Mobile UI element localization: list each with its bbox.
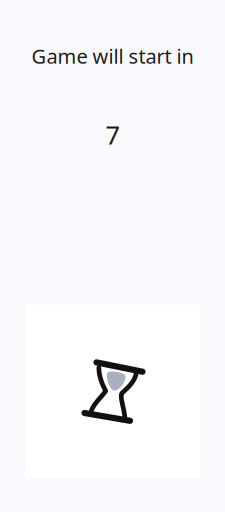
- staticText: Game will start in: [31, 43, 193, 69]
- staticText: 7: [105, 118, 119, 152]
